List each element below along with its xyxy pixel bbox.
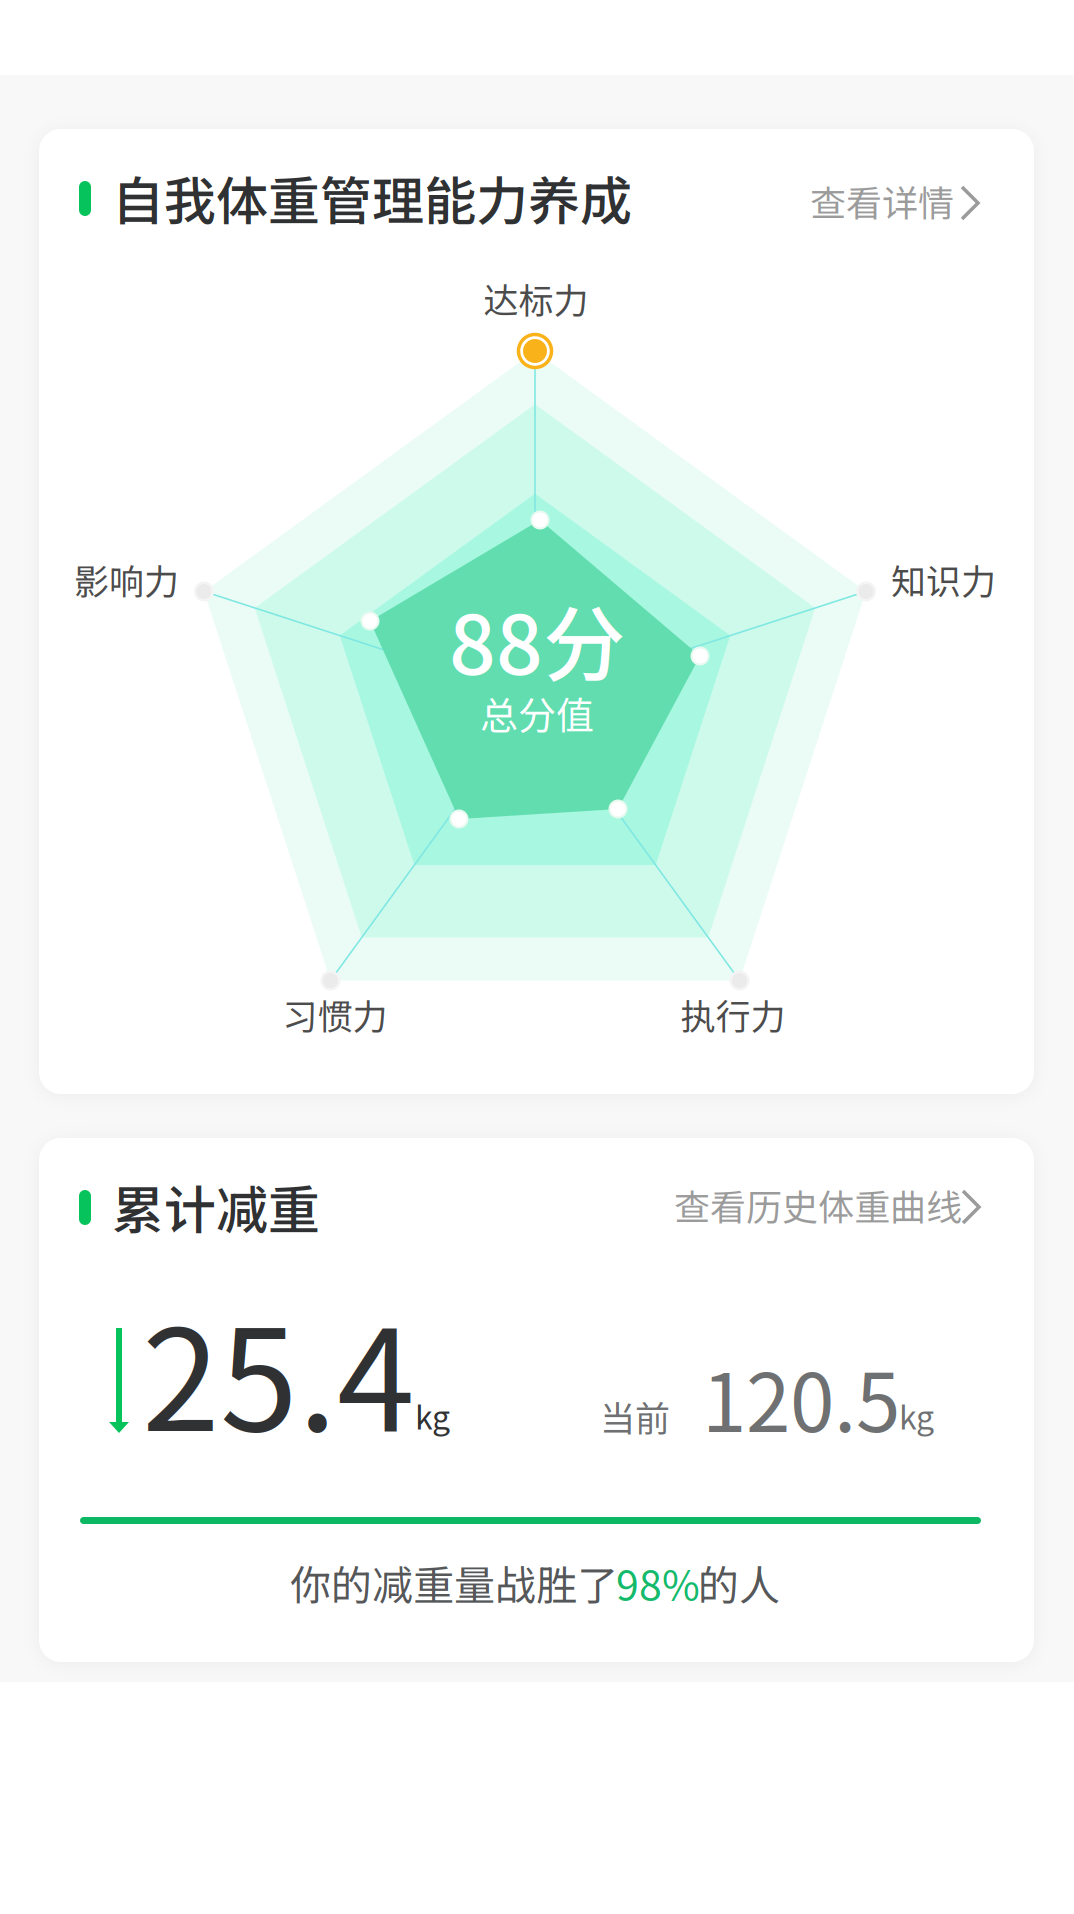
button[interactable]: 自我体重管理能力养成 [39,129,559,239]
staticText: 查看历史体重曲线 [674,1179,962,1231]
staticText: 自我体重管理能力养成 [112,160,632,235]
staticText: 98% [616,1553,700,1612]
staticText: 影响力 [74,554,179,605]
staticText: 25.4 [142,1269,415,1471]
button[interactable]: 累计减重 [39,1138,519,1248]
staticText: 知识力 [891,554,996,605]
staticText: 120.5 [702,1339,900,1455]
staticText: kg [415,1392,450,1439]
staticText: kg [899,1392,934,1439]
staticText: 查看详情 [810,175,954,227]
staticText: 88分 [449,580,625,698]
staticText: 的人 [698,1553,780,1612]
button[interactable]: 查看详情 [810,155,1074,1914]
staticText: 累计减重 [112,1169,320,1244]
staticText: 习惯力 [282,989,387,1040]
staticText: 总分值 [480,685,594,740]
staticText: 达标力 [483,273,588,324]
staticText: 当前 [600,1391,670,1442]
staticText: 执行力 [680,989,785,1040]
staticText: 你的减重量战胜了 [290,1553,618,1612]
button[interactable]: 查看历史体重曲线 [674,1159,1074,1914]
